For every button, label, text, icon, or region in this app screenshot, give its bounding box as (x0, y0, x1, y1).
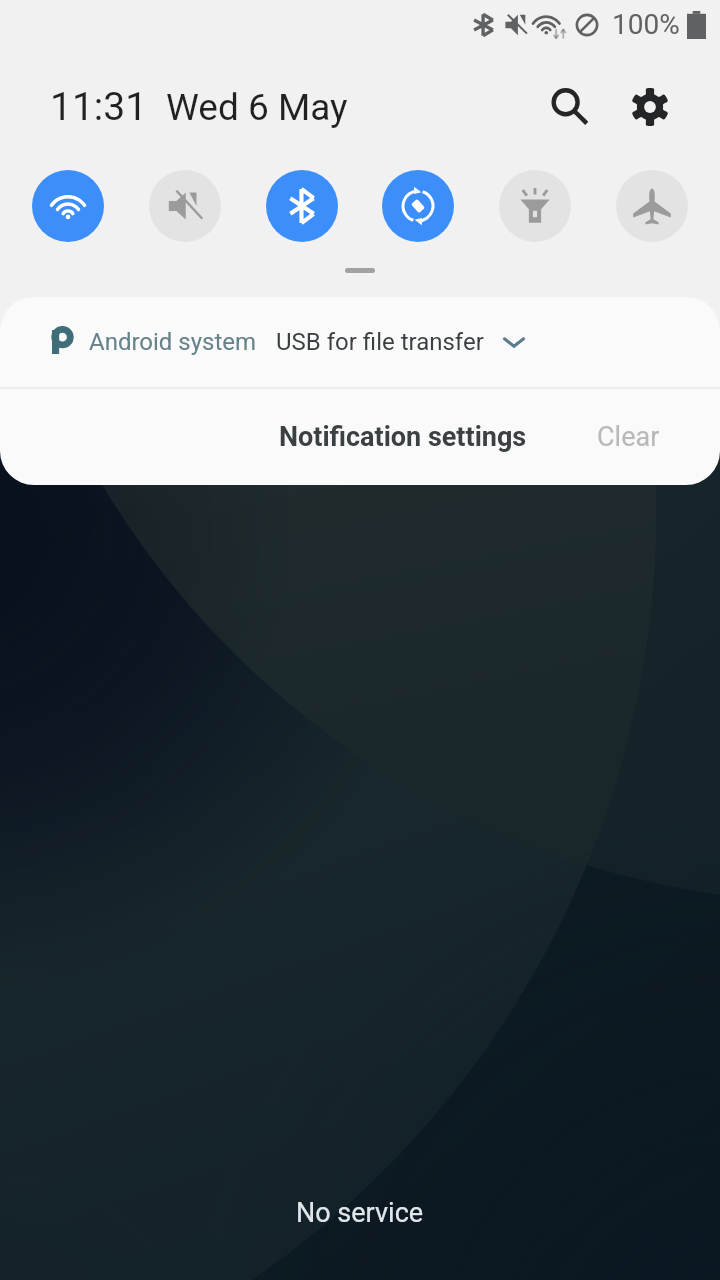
button[interactable]: Bluetooth (266, 170, 338, 242)
staticText: Clear (597, 421, 660, 453)
staticText: 100% (612, 8, 680, 41)
staticText: 11:31 (50, 84, 148, 130)
button[interactable]: Notification settings (261, 401, 545, 473)
staticText: Notification settings (279, 421, 527, 453)
button[interactable]: Wi-Fi (32, 170, 104, 242)
staticText: No service (296, 1197, 424, 1229)
button[interactable]: Airplane mode (616, 170, 688, 242)
button[interactable]: Android system (0, 297, 720, 387)
button[interactable]: Settings (622, 79, 678, 135)
staticText: Android system (89, 328, 257, 356)
button[interactable]: Sound off (149, 170, 221, 242)
staticText: Wed 6 May (166, 86, 348, 129)
staticText: USB for file transfer (276, 328, 484, 356)
button[interactable]: Auto rotate (382, 170, 454, 242)
button[interactable]: Search (542, 79, 598, 135)
button[interactable]: Clear (579, 401, 678, 473)
button[interactable]: Flashlight (499, 170, 571, 242)
